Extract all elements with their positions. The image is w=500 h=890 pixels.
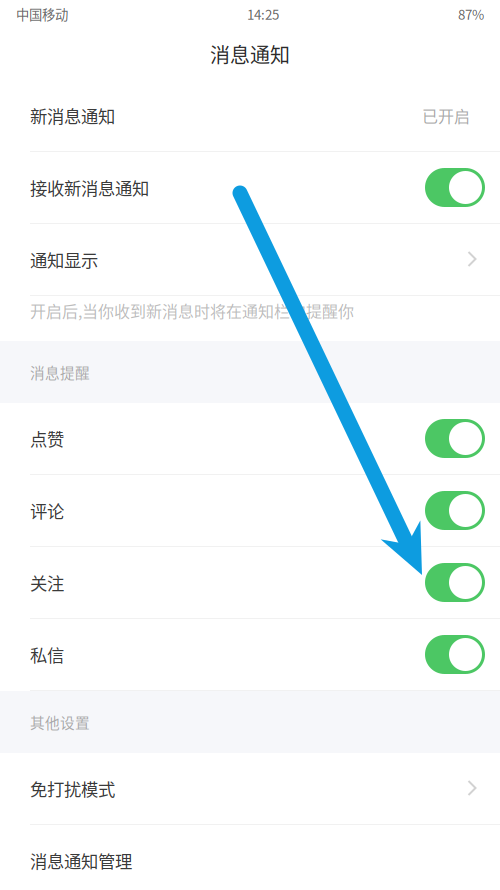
staticText: 开启后,当你收到新消息时将在通知栏中提醒你 (30, 299, 354, 322)
staticText: 接收新消息通知 (30, 175, 149, 200)
staticText: 其他设置 (30, 711, 90, 733)
button[interactable]: 消息通知管理 (0, 825, 500, 890)
button[interactable]: 评论 (0, 475, 500, 547)
staticText: 已开启 (422, 104, 470, 127)
staticText: 中国移动 (16, 4, 68, 24)
button[interactable]: 新消息通知 (0, 80, 500, 152)
staticText: 私信 (30, 642, 64, 667)
staticText: 14:25 (247, 4, 279, 24)
staticText: 免打扰模式 (30, 776, 115, 801)
staticText: 新消息通知 (30, 103, 115, 128)
staticText: 关注 (30, 570, 64, 595)
button[interactable]: 接收新消息通知 (0, 152, 500, 224)
button[interactable]: 私信 (0, 619, 500, 691)
staticText: 87% (458, 4, 484, 24)
staticText: 消息通知 (210, 39, 290, 68)
button[interactable]: 通知显示 (0, 224, 500, 296)
staticText: 评论 (30, 498, 64, 523)
button[interactable]: 点赞 (0, 403, 500, 475)
staticText: 消息提醒 (30, 361, 90, 383)
staticText: 点赞 (30, 426, 64, 451)
button[interactable]: 关注 (0, 547, 500, 619)
staticText: 消息通知管理 (30, 848, 132, 873)
button[interactable]: 免打扰模式 (0, 753, 500, 825)
staticText: 通知显示 (30, 247, 98, 272)
